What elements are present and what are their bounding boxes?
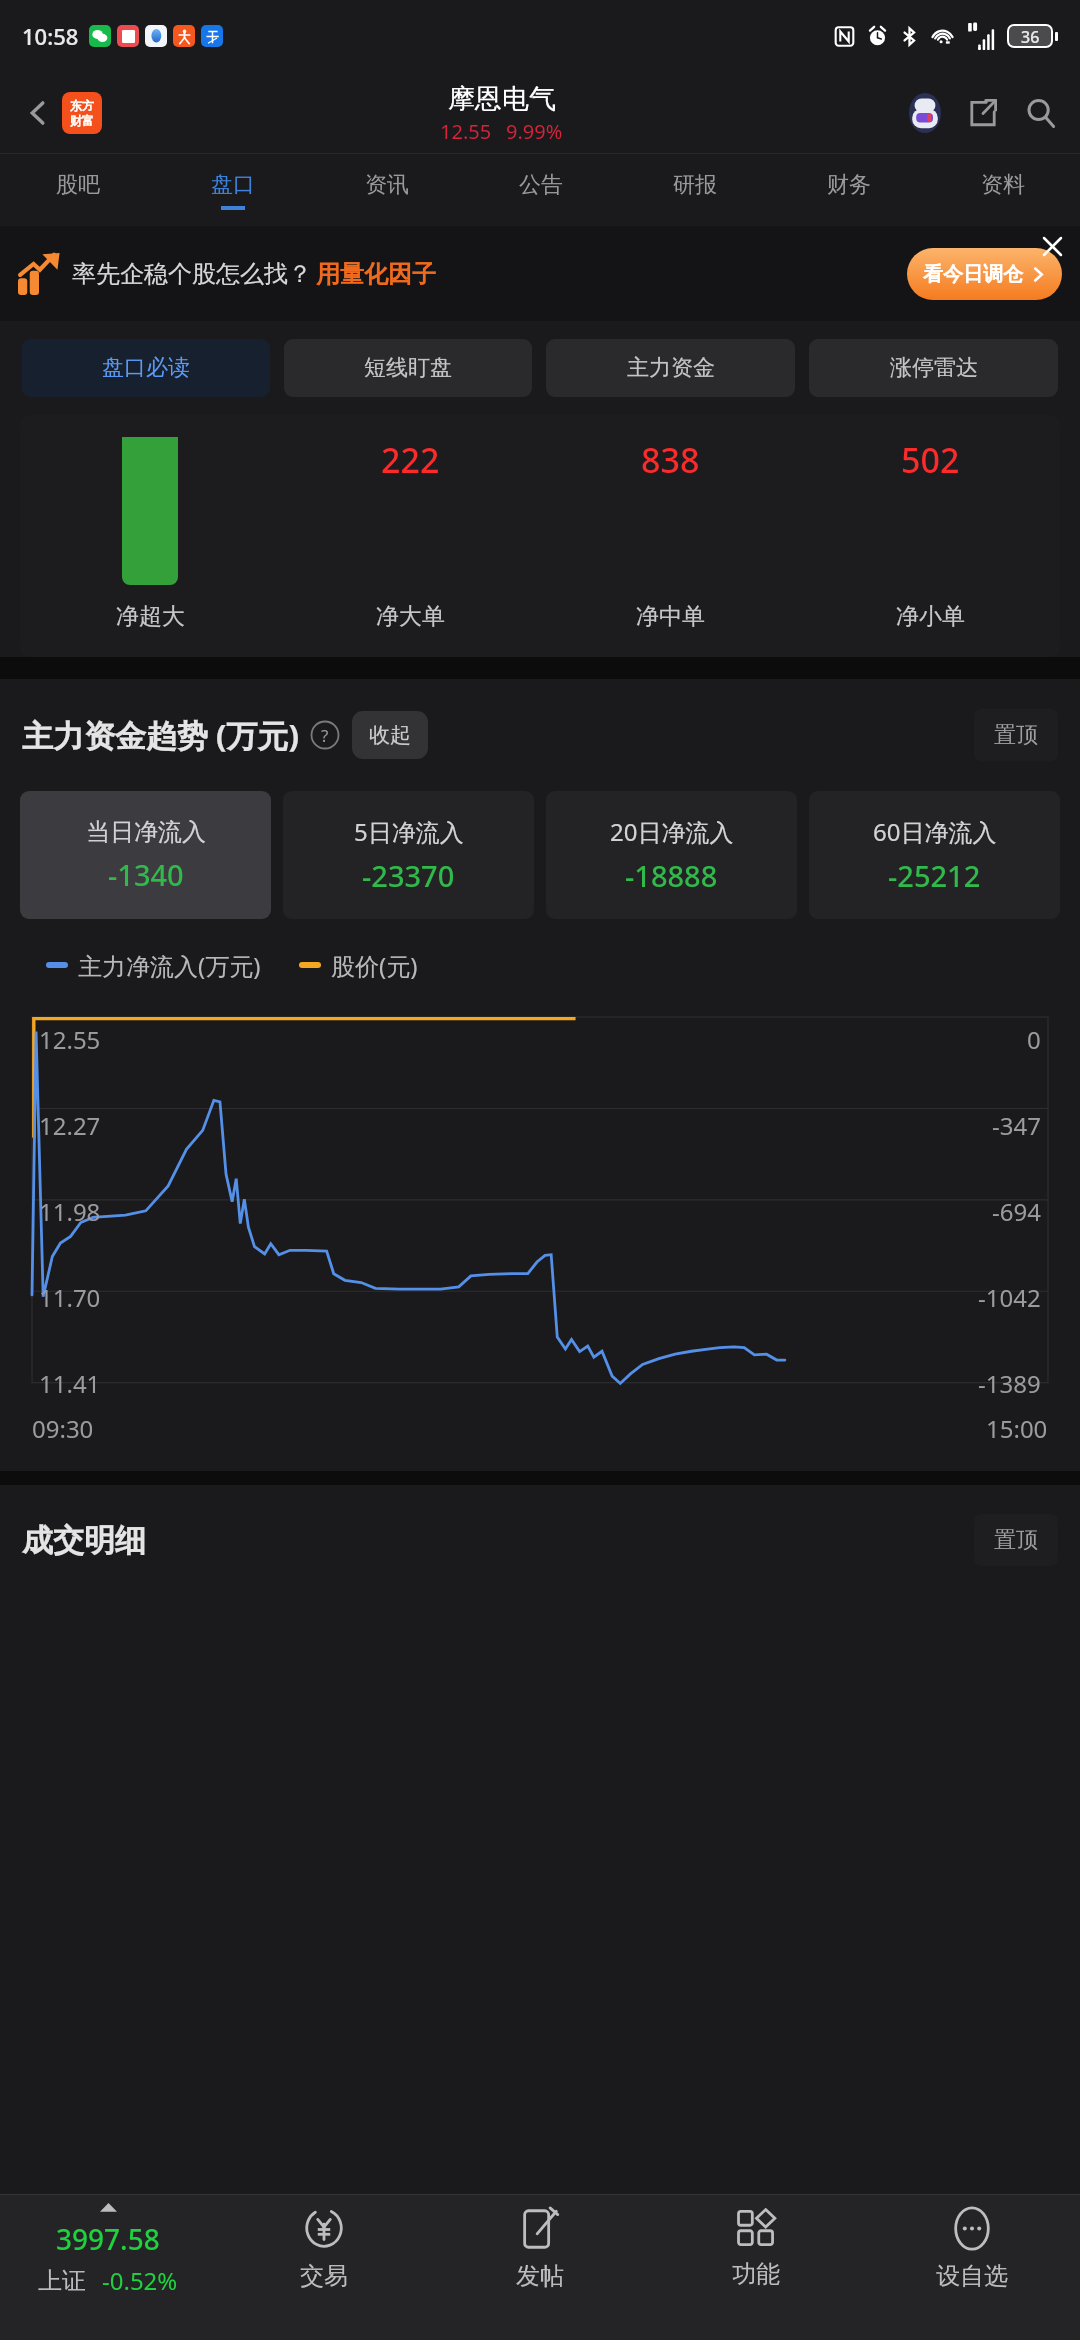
staticText: 净小单 — [896, 602, 965, 631]
button[interactable]: 公告 — [464, 154, 618, 226]
button[interactable]: Back — [16, 91, 60, 135]
staticText: ? — [321, 724, 329, 747]
staticText: 置顶 — [994, 1526, 1038, 1554]
staticText: 09:30 — [32, 1412, 94, 1445]
staticText: -23370 — [362, 856, 455, 895]
staticText: 成交明细 — [22, 1521, 146, 1560]
staticText: 主力资金 — [627, 354, 715, 382]
staticText: 资讯 — [365, 171, 409, 199]
staticText: -0.52% — [102, 2264, 178, 2297]
button[interactable]: Help — [310, 720, 340, 750]
staticText: 摩恩电气 — [448, 82, 556, 116]
staticText: -1042 — [978, 1281, 1041, 1314]
staticText: 20日净流入 — [610, 815, 734, 848]
button[interactable]: 222 — [280, 415, 540, 657]
button[interactable]: 当日净流入 — [20, 791, 271, 919]
button[interactable]: 20日净流入 — [546, 791, 797, 919]
staticText: 222 — [381, 437, 440, 483]
staticText: 0 — [1027, 1023, 1041, 1056]
staticText: 12.55 — [39, 1023, 101, 1056]
button[interactable]: AI assistant — [902, 90, 948, 136]
button[interactable]: East Money — [62, 92, 102, 134]
staticText: 净超大 — [116, 602, 185, 631]
staticText: 11.41 — [39, 1367, 101, 1400]
staticText: 公告 — [519, 171, 563, 199]
button[interactable]: 收起 — [352, 711, 428, 759]
button[interactable]: 短线盯盘 — [284, 339, 532, 397]
staticText: -694 — [992, 1195, 1041, 1228]
staticText: 资料 — [981, 171, 1025, 199]
staticText: 当日净流入 — [86, 817, 206, 847]
button[interactable]: 置顶 — [974, 709, 1058, 761]
button[interactable]: 60日净流入 — [809, 791, 1060, 919]
staticText: 上证 — [38, 2266, 86, 2296]
button[interactable]: Search — [1018, 90, 1064, 136]
button[interactable]: 交易 — [216, 2195, 432, 2340]
staticText: 短线盯盘 — [364, 354, 452, 382]
staticText: -1389 — [978, 1367, 1041, 1400]
staticText: 5日净流入 — [354, 815, 464, 848]
staticText: -25212 — [888, 856, 981, 895]
button[interactable]: 502 — [800, 415, 1060, 657]
button[interactable]: 股吧 — [0, 154, 155, 226]
staticText: 盘口必读 — [102, 354, 190, 382]
staticText: 12.27 — [39, 1109, 101, 1142]
staticText: 功能 — [732, 2259, 780, 2289]
button[interactable]: 财务 — [772, 154, 926, 226]
button[interactable]: 看今日调仓 — [907, 248, 1062, 300]
button[interactable]: 净超大 — [20, 415, 280, 657]
button[interactable]: Close ad — [1036, 230, 1068, 262]
button[interactable]: 研报 — [618, 154, 772, 226]
staticText: 置顶 — [994, 721, 1038, 749]
button[interactable]: 主力资金 — [546, 339, 795, 397]
staticText: 财富 — [70, 113, 94, 128]
staticText: 60日净流入 — [873, 815, 997, 848]
button[interactable]: 5日净流入 — [283, 791, 534, 919]
button[interactable]: 涨停雷达 — [809, 339, 1058, 397]
button[interactable]: 发帖 — [432, 2195, 648, 2340]
staticText: 看今日调仓 — [923, 262, 1023, 287]
staticText: 12.55 — [440, 118, 492, 145]
staticText: 研报 — [673, 171, 717, 199]
button[interactable]: 盘口必读 — [22, 339, 270, 397]
staticText: 主力净流入(万元) — [78, 949, 261, 982]
staticText: 盘口 — [211, 171, 255, 199]
staticText: 9.99% — [506, 118, 563, 145]
staticText: 率先企稳个股怎么找？ — [72, 259, 312, 289]
button[interactable]: 功能 — [648, 2195, 864, 2340]
staticText: 股价(元) — [331, 949, 418, 982]
staticText: 3997.58 — [56, 2220, 160, 2258]
staticText: 11.98 — [39, 1195, 101, 1228]
staticText: 东方 — [70, 98, 94, 113]
staticText: -1340 — [108, 855, 184, 894]
button[interactable]: 3997.58 — [0, 2195, 216, 2340]
staticText: 收起 — [369, 722, 411, 748]
button[interactable]: 838 — [540, 415, 800, 657]
staticText: 36 — [1021, 26, 1040, 46]
staticText: 交易 — [300, 2261, 348, 2291]
staticText: 净中单 — [636, 602, 705, 631]
staticText: 502 — [901, 437, 960, 483]
staticText: 设自选 — [936, 2261, 1008, 2291]
button[interactable]: 资料 — [926, 154, 1080, 226]
button[interactable]: 置顶 — [974, 1514, 1058, 1566]
staticText: -347 — [992, 1109, 1041, 1142]
button[interactable]: Share — [960, 90, 1006, 136]
staticText: -18888 — [625, 856, 718, 895]
staticText: 涨停雷达 — [890, 354, 978, 382]
staticText: 11.70 — [39, 1281, 101, 1314]
staticText: 财务 — [827, 171, 871, 199]
staticText: 15:00 — [986, 1412, 1048, 1445]
button[interactable]: 设自选 — [864, 2195, 1080, 2340]
staticText: 发帖 — [516, 2261, 564, 2291]
staticText: 净大单 — [376, 602, 445, 631]
staticText: 股吧 — [56, 171, 100, 199]
staticText: 主力资金趋势 (万元) — [22, 714, 300, 756]
button[interactable]: 盘口 — [155, 154, 310, 226]
button[interactable]: 资讯 — [310, 154, 464, 226]
staticText: 10:58 — [22, 21, 79, 51]
staticText: 用量化因子 — [316, 259, 436, 289]
staticText: 838 — [641, 437, 700, 483]
